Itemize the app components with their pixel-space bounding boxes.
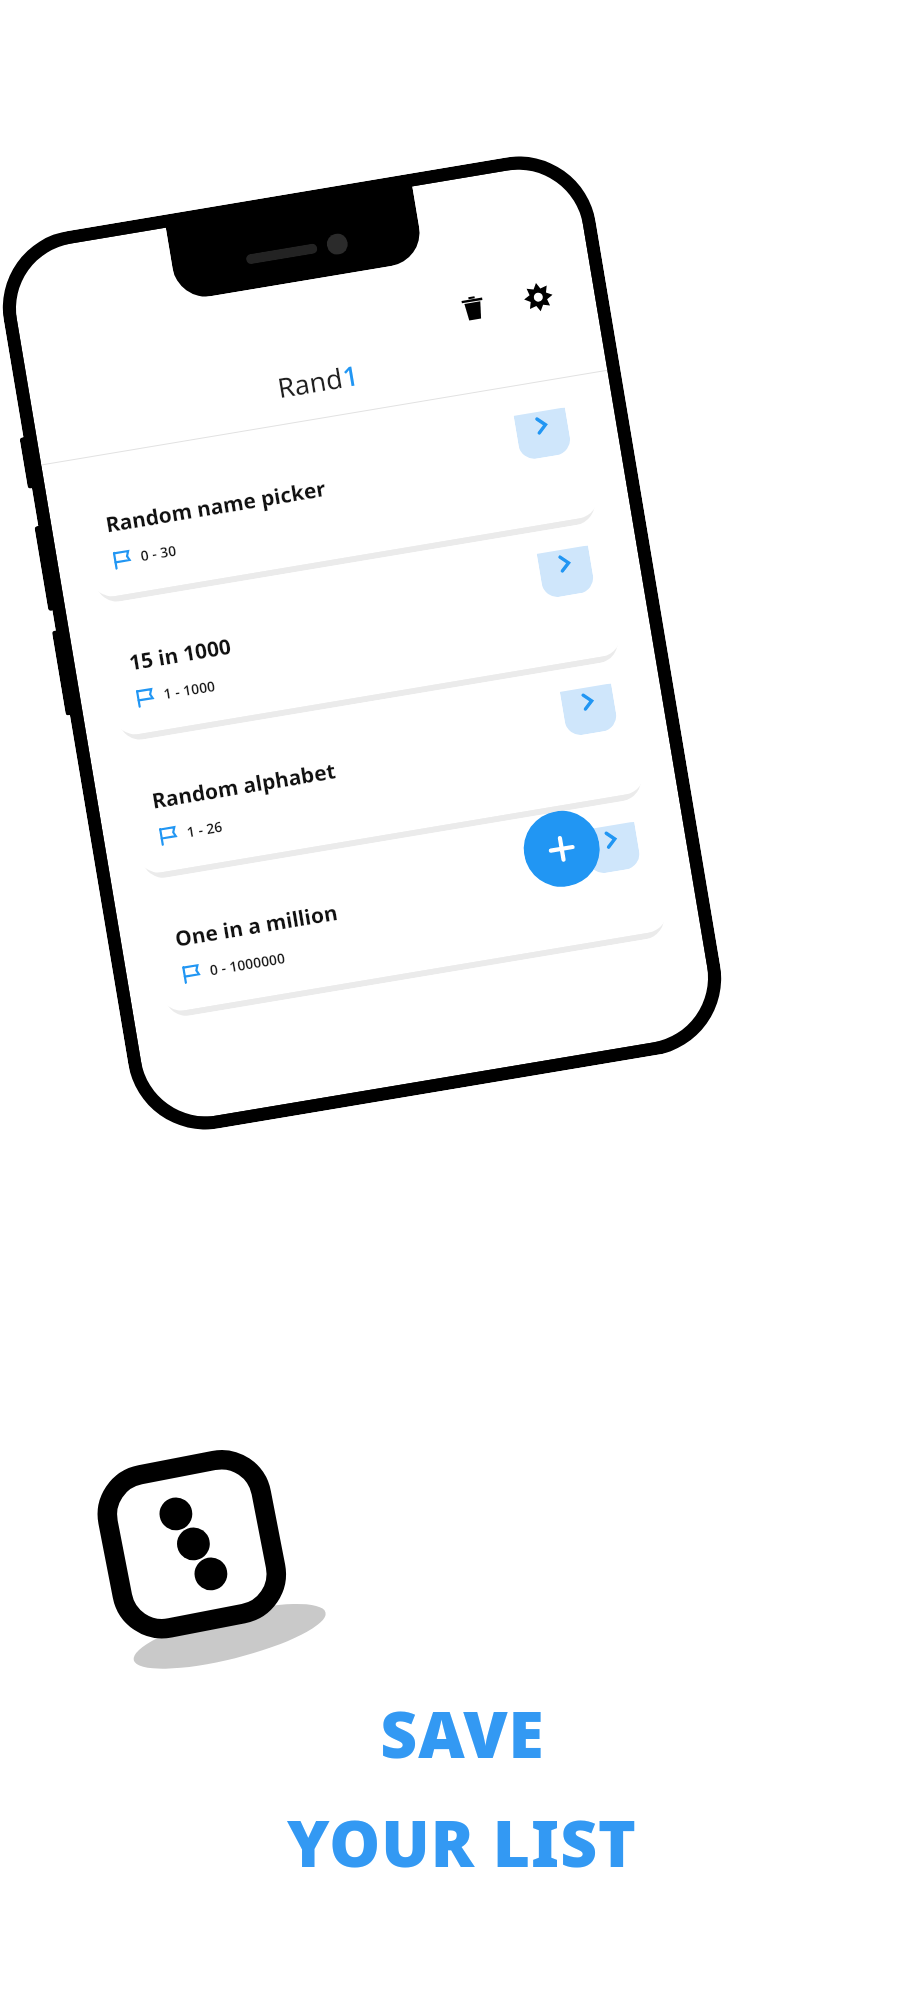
staticText: 1 - 1000 xyxy=(162,676,216,703)
staticText: 1 - 26 xyxy=(185,817,224,841)
button[interactable]: 15 in 1000 xyxy=(99,542,624,738)
button[interactable]: Open xyxy=(583,821,642,875)
staticText: 0 - 30 xyxy=(139,540,178,565)
staticText: 15 in 1000 xyxy=(127,632,233,677)
button[interactable]: Open xyxy=(514,407,572,461)
staticText: 1 xyxy=(340,356,362,395)
staticText: SAVE xyxy=(380,1690,545,1777)
button[interactable]: Random alphabet xyxy=(122,680,647,876)
staticText: 0 - 1000000 xyxy=(208,948,286,979)
staticText: Random name picker xyxy=(104,474,328,539)
staticText: One in a million xyxy=(173,898,340,954)
button[interactable]: One in a million xyxy=(145,819,670,1014)
button[interactable]: Random name picker xyxy=(76,404,601,600)
button[interactable]: Settings xyxy=(513,272,564,322)
button[interactable]: Open xyxy=(560,683,619,737)
staticText: Rand xyxy=(275,359,346,406)
button[interactable]: Open xyxy=(537,545,596,599)
staticText: YOUR LIST xyxy=(287,1799,637,1886)
staticText: Random alphabet xyxy=(150,756,338,816)
button[interactable]: Add xyxy=(518,805,605,893)
button[interactable]: Delete xyxy=(448,283,499,333)
